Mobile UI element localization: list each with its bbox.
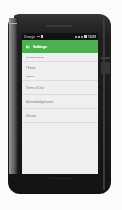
button[interactable]: Theme [22,62,98,73]
button[interactable]: Version [22,109,98,122]
staticText: 13:39 [88,35,96,39]
staticText: Version [26,114,37,118]
staticText: Acknowledgements [26,100,54,104]
staticText: Orange [24,35,35,39]
button[interactable]: Back [22,40,98,53]
button[interactable]: Back [25,44,31,50]
staticText: ABOUT [26,75,34,78]
staticText: Terms of Use [26,86,44,90]
staticText: Settings [33,44,47,49]
staticText: Theme [26,66,36,70]
button[interactable]: Terms of Use [22,81,98,94]
button[interactable]: Acknowledgements [22,95,98,108]
staticText: CHANGE THEME [26,56,45,59]
